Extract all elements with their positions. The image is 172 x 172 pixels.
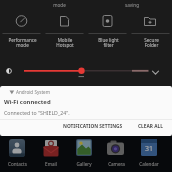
button[interactable] xyxy=(37,138,65,168)
staticText: Android System xyxy=(16,89,50,95)
button[interactable] xyxy=(16,64,156,78)
button[interactable] xyxy=(1,11,43,51)
button[interactable] xyxy=(107,140,124,156)
button[interactable] xyxy=(102,138,130,168)
staticText: saving xyxy=(125,2,139,8)
button[interactable]: Secure Folder xyxy=(130,36,172,50)
button[interactable] xyxy=(44,11,86,51)
staticText: Connected to "SHIELD_24". xyxy=(4,109,70,116)
staticText: Wi-Fi connected xyxy=(4,98,51,106)
staticText: Mobile Hotspot xyxy=(56,37,74,49)
button[interactable] xyxy=(3,138,31,168)
button[interactable]: Performance mode xyxy=(1,36,43,50)
staticText: NOTIFICATION SETTINGS xyxy=(63,123,123,130)
button[interactable] xyxy=(43,139,59,157)
button[interactable] xyxy=(130,11,172,51)
staticText: Blue light filter xyxy=(98,37,119,49)
staticText: Camera xyxy=(108,161,125,167)
button[interactable]: Blue light filter xyxy=(87,36,129,50)
staticText: mode xyxy=(53,2,66,8)
staticText: Calendar xyxy=(139,161,159,167)
button[interactable] xyxy=(70,138,98,168)
button[interactable] xyxy=(148,64,164,78)
staticText: Email xyxy=(45,161,57,167)
staticText: Secure Folder xyxy=(144,37,159,49)
button[interactable]: Mobile Hotspot xyxy=(44,36,86,50)
button[interactable] xyxy=(76,139,92,156)
button[interactable]: CLEAR ALL xyxy=(133,120,167,132)
staticText: Performance mode xyxy=(8,37,37,49)
button[interactable]: 31 xyxy=(141,139,157,156)
button[interactable] xyxy=(9,139,25,157)
button[interactable] xyxy=(135,138,163,168)
staticText: CLEAR ALL xyxy=(138,123,163,130)
staticText: Gallery xyxy=(76,161,92,167)
button[interactable] xyxy=(0,86,172,136)
staticText: 31 xyxy=(145,144,154,154)
button[interactable] xyxy=(87,11,129,51)
staticText: Contacts xyxy=(8,161,27,167)
button[interactable]: NOTIFICATION SETTINGS xyxy=(56,120,130,132)
